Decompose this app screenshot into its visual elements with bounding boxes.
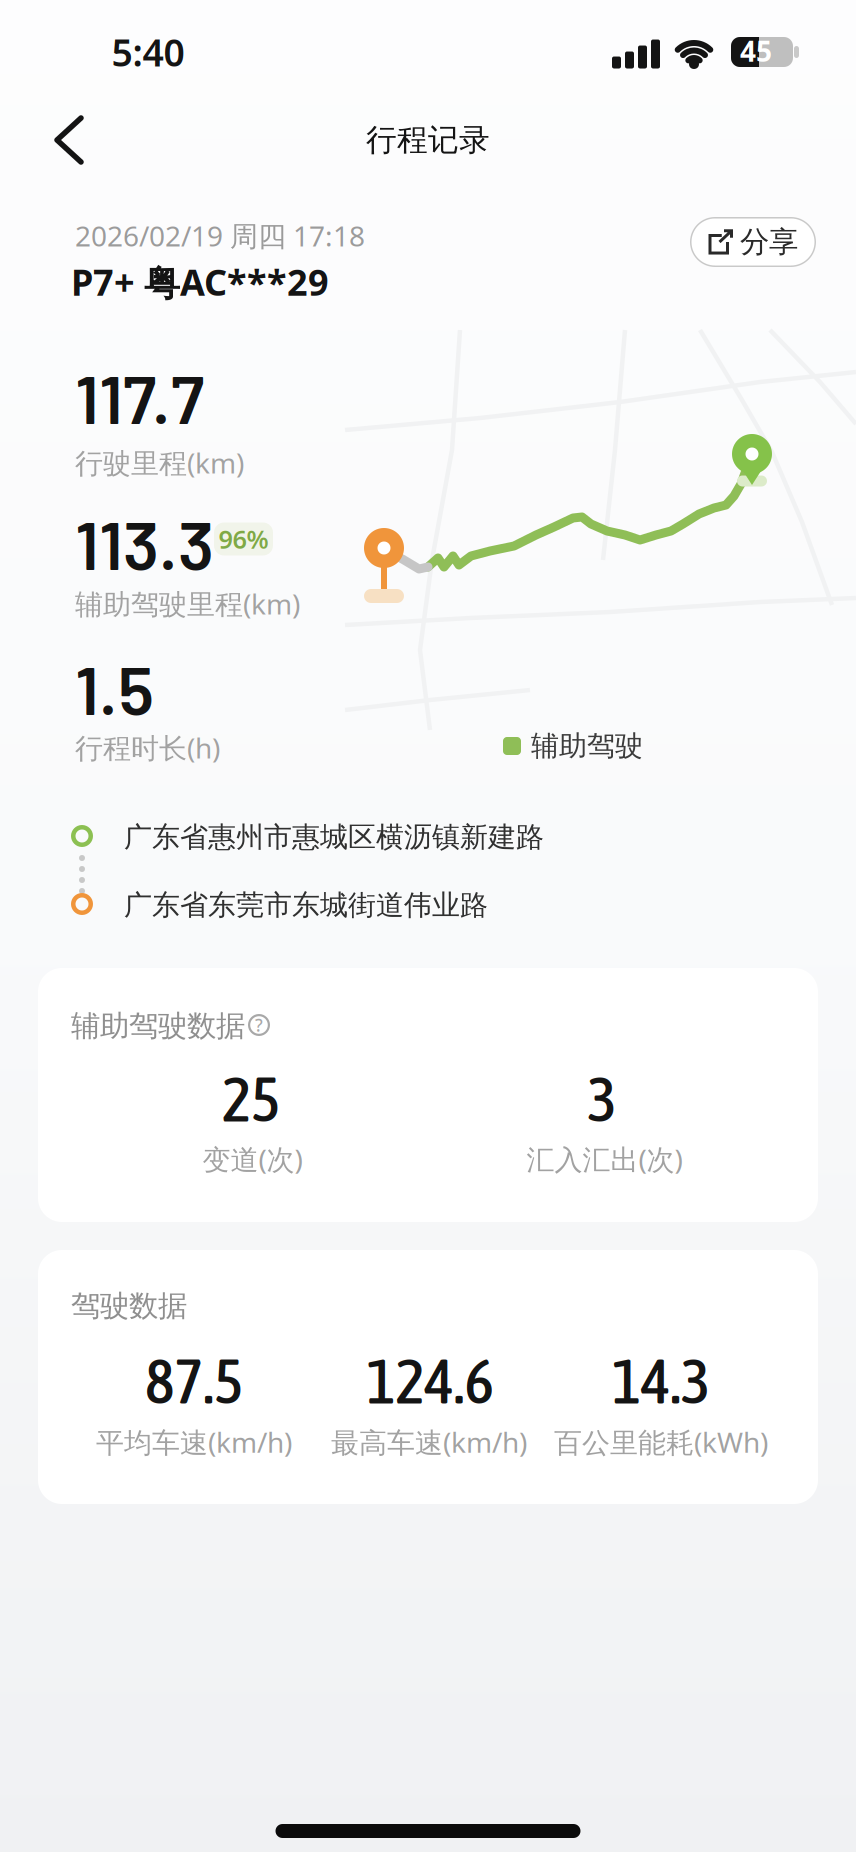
staticText: 行程记录: [366, 121, 490, 159]
staticText: 2026/02/19 周四 17:18: [75, 217, 365, 254]
staticText: 辅助驾驶数据: [71, 1008, 245, 1044]
staticText: 百公里能耗(kWh): [554, 1423, 768, 1461]
staticText: 最高车速(km/h): [331, 1423, 527, 1461]
button[interactable]: Back: [43, 104, 95, 176]
staticText: 5:40: [111, 27, 184, 77]
staticText: 124.6: [366, 1345, 493, 1417]
staticText: P7+ 粤AC***29: [71, 258, 329, 306]
staticText: 行程时长(h): [75, 729, 220, 766]
staticText: 96%: [218, 522, 268, 556]
staticText: 25: [222, 1063, 280, 1135]
staticText: 87.5: [145, 1345, 243, 1417]
staticText: 14.3: [612, 1345, 710, 1417]
staticText: 117.7: [75, 356, 204, 438]
staticText: 1.5: [75, 647, 154, 729]
staticText: ?: [255, 1013, 263, 1036]
staticText: 平均车速(km/h): [96, 1423, 292, 1461]
staticText: 行驶里程(km): [75, 444, 244, 481]
staticText: 辅助驾驶: [531, 729, 643, 763]
staticText: 汇入汇出(次): [526, 1140, 682, 1178]
staticText: 广东省东莞市东城街道伟业路: [124, 888, 488, 922]
staticText: 分享: [740, 224, 798, 260]
staticText: 驾驶数据: [71, 1288, 187, 1324]
staticText: 变道(次): [202, 1140, 302, 1178]
staticText: 辅助驾驶里程(km): [75, 585, 300, 622]
staticText: 113.3: [75, 502, 214, 584]
staticText: 3: [587, 1063, 616, 1135]
button[interactable]: 辅助驾驶数据说明: [248, 1013, 270, 1036]
staticText: 45: [740, 32, 772, 70]
button[interactable]: 分享: [690, 217, 816, 267]
staticText: 广东省惠州市惠城区横沥镇新建路: [124, 820, 544, 854]
